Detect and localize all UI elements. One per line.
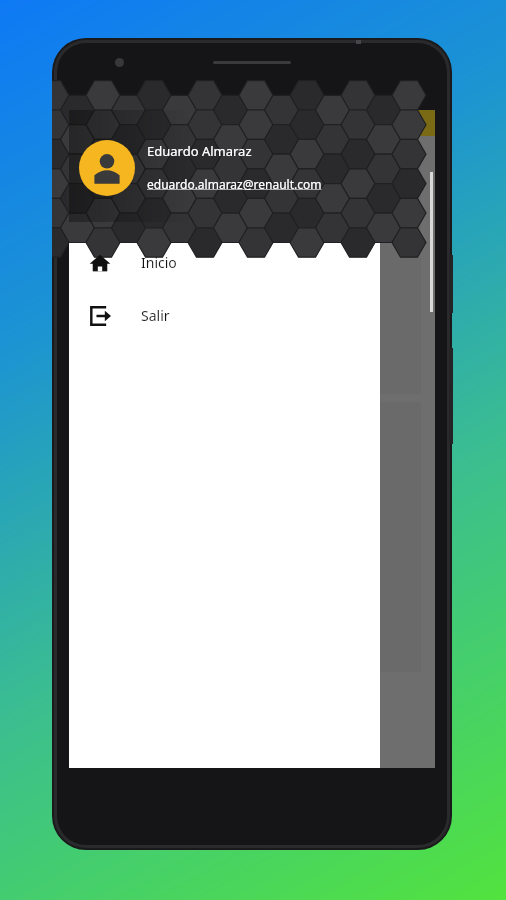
staticText: Inicio xyxy=(141,253,177,272)
button[interactable]: Salir xyxy=(69,289,380,342)
staticText: eduardo.almaraz@renault.com xyxy=(147,176,322,192)
staticText: Salir xyxy=(141,306,170,325)
staticText: Eduardo Almaraz xyxy=(147,142,252,160)
button[interactable]: Inicio xyxy=(69,236,380,289)
